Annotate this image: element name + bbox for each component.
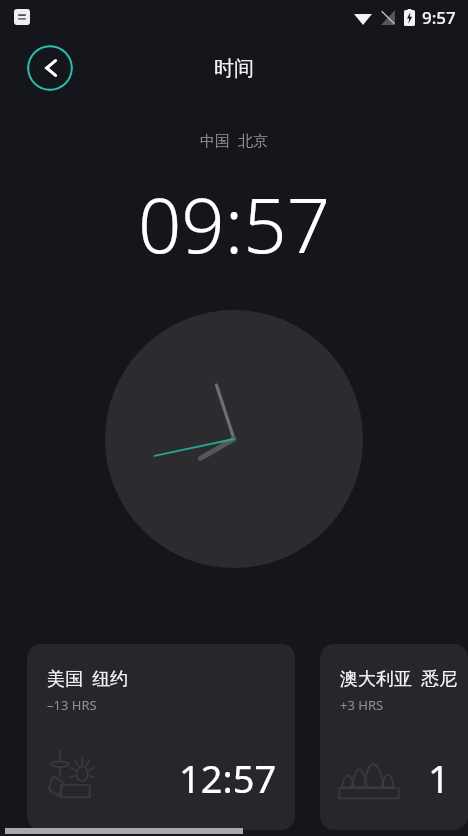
staticText: 12:57 [179, 752, 277, 804]
button[interactable]: 美国 纽约 [27, 644, 295, 830]
button[interactable]: 澳大利亚 悉尼 [320, 644, 468, 830]
staticText: +3 HRS [340, 696, 384, 714]
staticText: 中国 北京 [0, 130, 468, 150]
staticText: 09:57 [0, 172, 468, 276]
staticText: 澳大利亚 悉尼 [340, 666, 458, 691]
button[interactable]: Back [27, 45, 73, 91]
staticText: 9:57 [422, 6, 456, 29]
staticText: –13 HRS [47, 696, 97, 714]
staticText: 1 [428, 752, 450, 804]
staticText: 美国 纽约 [47, 666, 129, 691]
staticText: 时间 [214, 56, 254, 81]
